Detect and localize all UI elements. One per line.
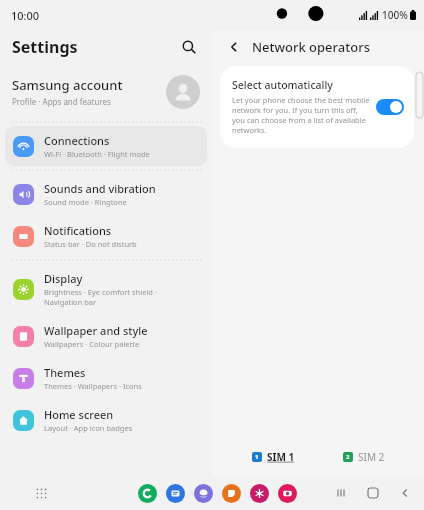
staticText: Layout · App icon badges: [44, 423, 133, 433]
button[interactable]: Internet: [194, 484, 213, 503]
button[interactable]: Recents: [330, 482, 352, 504]
staticText: Network operators: [252, 38, 370, 56]
button[interactable]: Themes: [5, 358, 207, 398]
staticText: Profile · Apps and features: [12, 96, 111, 107]
button[interactable]: Back: [394, 482, 416, 504]
button[interactable]: Notifications: [5, 216, 207, 256]
staticText: Themes: [44, 365, 86, 380]
staticText: Notifications: [44, 223, 112, 238]
button[interactable]: Gallery: [250, 484, 269, 503]
staticText: 100%: [382, 8, 408, 22]
staticText: Display: [44, 271, 83, 286]
staticText: SIM 2: [358, 450, 385, 464]
staticText: Let your phone choose the best mobile ne…: [232, 95, 370, 135]
staticText: Home screen: [44, 407, 114, 422]
staticText: Sound mode · Ringtone: [44, 197, 127, 207]
staticText: Connections: [44, 133, 110, 148]
button[interactable]: Home screen: [5, 400, 207, 440]
button[interactable]: Notes: [222, 484, 241, 503]
staticText: Select automatically: [232, 78, 333, 92]
button[interactable]: Sounds and vibration: [5, 174, 207, 214]
staticText: Brightness · Eye comfort shield · Naviga…: [44, 287, 157, 307]
button[interactable]: Back: [222, 35, 246, 59]
staticText: Wallpapers · Colour palette: [44, 339, 140, 349]
button[interactable]: Search: [176, 34, 202, 60]
staticText: Wi-Fi · Bluetooth · Flight mode: [44, 149, 150, 159]
button[interactable]: Messages: [166, 484, 185, 503]
button[interactable]: Select automatically: [220, 66, 414, 148]
button[interactable]: Apps: [30, 482, 52, 504]
button[interactable]: Camera: [278, 484, 297, 503]
button[interactable]: Display: [5, 264, 207, 314]
button[interactable]: Select automatically toggle: [376, 99, 404, 115]
button[interactable]: 2: [340, 447, 388, 467]
staticText: Status bar · Do not disturb: [44, 239, 137, 249]
staticText: 1: [255, 453, 259, 461]
staticText: Settings: [12, 36, 78, 58]
button[interactable]: Samsung account: [12, 64, 200, 119]
staticText: Themes · Wallpapers · Icons: [44, 381, 142, 391]
staticText: Sounds and vibration: [44, 181, 156, 196]
staticText: Samsung account: [12, 76, 123, 94]
staticText: 10:00: [11, 8, 40, 23]
button[interactable]: Home: [362, 482, 384, 504]
button[interactable]: Phone: [138, 484, 157, 503]
staticText: 2: [346, 453, 350, 461]
button[interactable]: Connections: [5, 126, 207, 166]
button[interactable]: Wallpaper and style: [5, 316, 207, 356]
staticText: Wallpaper and style: [44, 323, 148, 338]
button[interactable]: 1: [249, 447, 298, 467]
staticText: SIM 1: [267, 450, 295, 464]
